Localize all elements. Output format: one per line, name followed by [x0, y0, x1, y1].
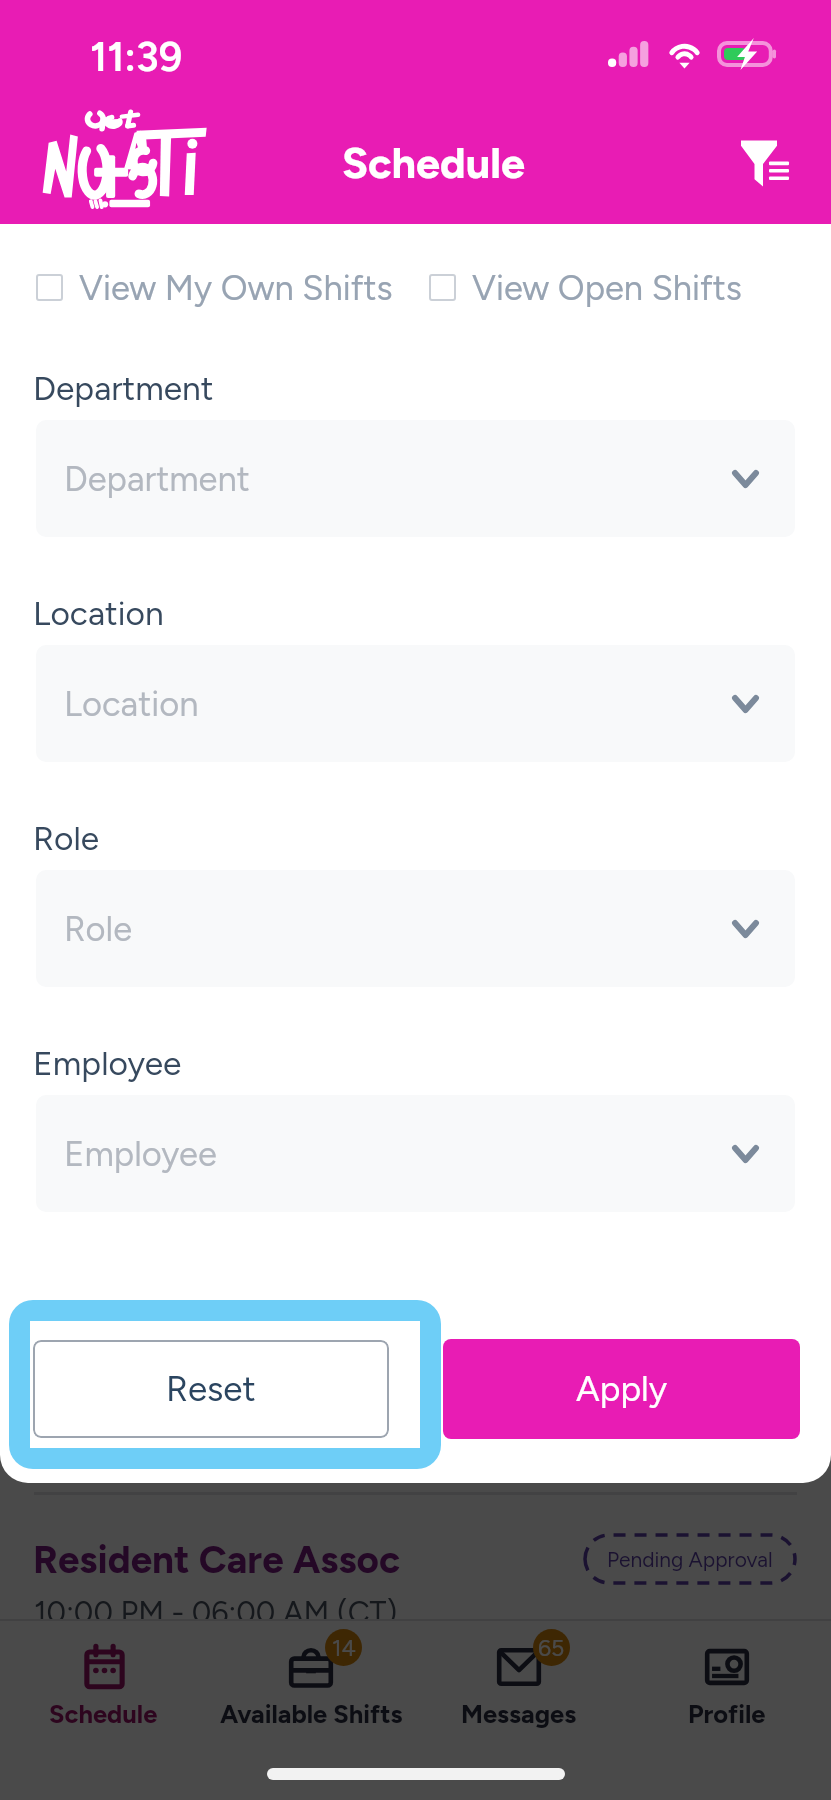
staticText: Available Shifts	[220, 1699, 403, 1730]
staticText: Profile	[688, 1699, 766, 1730]
staticText: Reset	[166, 1368, 256, 1410]
staticText: Employee	[64, 1133, 217, 1174]
button[interactable]: Department	[36, 420, 795, 537]
staticText: Employee	[33, 1043, 182, 1083]
staticText: 10:00 PM - 06:00 AM (CT)	[34, 1594, 398, 1631]
button[interactable]: Schedule	[0, 1619, 207, 1730]
staticText: Pending Approval	[607, 1547, 773, 1572]
button[interactable]: 14	[207, 1619, 415, 1730]
button[interactable]: View My Own Shifts	[36, 259, 393, 316]
staticText: Location	[64, 683, 199, 724]
staticText: 11:39	[90, 32, 183, 81]
staticText: 14	[332, 1634, 356, 1662]
staticText: View Open Shifts	[472, 267, 742, 308]
staticText: Apply	[576, 1368, 668, 1410]
button[interactable]: View Open Shifts	[429, 259, 742, 316]
button[interactable]: Apply	[443, 1339, 800, 1439]
staticText: Resident Care Assoc	[33, 1536, 400, 1582]
staticText: 65	[538, 1634, 565, 1662]
staticText: Schedule	[49, 1699, 158, 1730]
button[interactable]: Reset	[33, 1340, 389, 1438]
staticText: Role	[64, 908, 133, 949]
staticText: Department	[33, 368, 214, 408]
button[interactable]: Role	[36, 870, 795, 987]
staticText: Schedule	[342, 137, 525, 189]
staticText: View My Own Shifts	[79, 267, 393, 308]
button[interactable]: Profile	[623, 1619, 831, 1730]
button[interactable]: Filter	[736, 134, 794, 192]
staticText: Department	[64, 458, 250, 499]
staticText: Role	[33, 818, 100, 858]
button[interactable]: 65	[415, 1619, 623, 1730]
staticText: Location	[33, 593, 164, 633]
button[interactable]: Employee	[36, 1095, 795, 1212]
staticText: Messages	[461, 1699, 577, 1730]
button[interactable]: Location	[36, 645, 795, 762]
